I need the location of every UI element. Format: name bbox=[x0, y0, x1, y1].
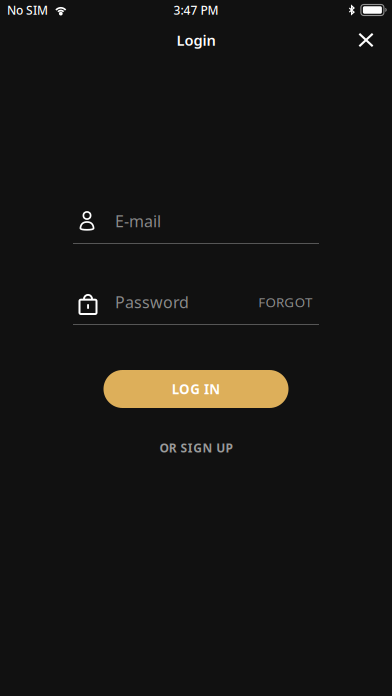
button[interactable]: OR SIGN UP bbox=[141, 431, 250, 465]
staticText: No SIM bbox=[7, 2, 48, 18]
button[interactable]: LOG IN bbox=[103, 370, 288, 408]
staticText: E-mail bbox=[115, 210, 161, 232]
staticText: FORGOT bbox=[258, 293, 312, 311]
button[interactable]: Password bbox=[73, 291, 258, 313]
staticText: Password bbox=[115, 291, 189, 313]
staticText: 3:47 PM bbox=[173, 2, 218, 18]
staticText: Login bbox=[176, 30, 215, 50]
staticText: OR SIGN UP bbox=[159, 440, 232, 456]
button[interactable]: Close bbox=[344, 20, 388, 60]
staticText: LOG IN bbox=[172, 380, 220, 398]
button[interactable]: FORGOT bbox=[258, 293, 319, 311]
button[interactable]: E-mail bbox=[73, 210, 319, 232]
